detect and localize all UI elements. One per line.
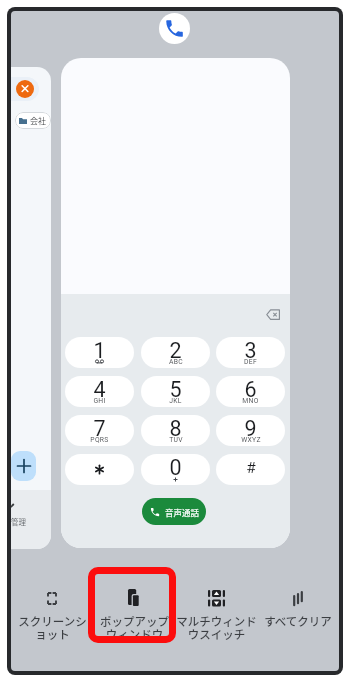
button[interactable]: 9	[216, 415, 285, 446]
button[interactable]: すべてクリア	[257, 578, 339, 653]
button[interactable]: 会社	[15, 112, 51, 129]
staticText: すべてクリア	[264, 613, 332, 630]
staticText: 3	[244, 338, 257, 363]
button[interactable]: 1	[65, 337, 134, 368]
staticText: 9	[244, 416, 257, 441]
button[interactable]	[65, 454, 134, 485]
button[interactable]: ポップアップ ウィンドウ	[93, 578, 175, 653]
button[interactable]: 0	[141, 454, 210, 485]
button[interactable]: スクリーンシ ョット	[11, 578, 93, 653]
button[interactable]: 3	[216, 337, 285, 368]
button[interactable]: 4	[65, 376, 134, 407]
staticText: TUV	[169, 436, 183, 444]
button[interactable]: 7	[65, 415, 134, 446]
staticText: 4	[93, 377, 106, 402]
staticText: 管理	[11, 516, 26, 527]
staticText: ポップアップ ウィンドウ	[100, 613, 169, 642]
staticText: 5	[169, 377, 182, 402]
staticText: 会社	[30, 115, 46, 127]
button[interactable]: 8	[141, 415, 210, 446]
staticText: DEF	[244, 358, 257, 366]
staticText: 音声通話	[165, 506, 200, 518]
staticText: 7	[93, 416, 106, 441]
staticText: WXYZ	[241, 436, 261, 444]
staticText: 8	[169, 416, 182, 441]
button[interactable]: 5	[141, 376, 210, 407]
staticText: PQRS	[90, 436, 109, 444]
staticText: 6	[244, 377, 257, 402]
button[interactable]: #	[216, 454, 285, 485]
staticText: JKL	[169, 397, 182, 405]
staticText: MNO	[242, 397, 259, 405]
button[interactable]	[16, 80, 34, 98]
button[interactable]	[11, 451, 36, 481]
staticText: 2	[169, 338, 182, 363]
staticText: マルチウィンド ウスイッチ	[176, 613, 257, 642]
staticText: 1	[93, 338, 106, 363]
staticText: 0	[169, 455, 182, 480]
staticText: GHI	[93, 397, 106, 405]
button[interactable]: マルチウィンド ウスイッチ	[175, 578, 257, 653]
staticText: #	[246, 459, 256, 477]
button[interactable]: 6	[216, 376, 285, 407]
button[interactable]: 音声通話	[142, 498, 206, 525]
button[interactable]: 2	[141, 337, 210, 368]
staticText: ABC	[169, 358, 183, 366]
staticText: スクリーンシ ョット	[18, 613, 87, 642]
